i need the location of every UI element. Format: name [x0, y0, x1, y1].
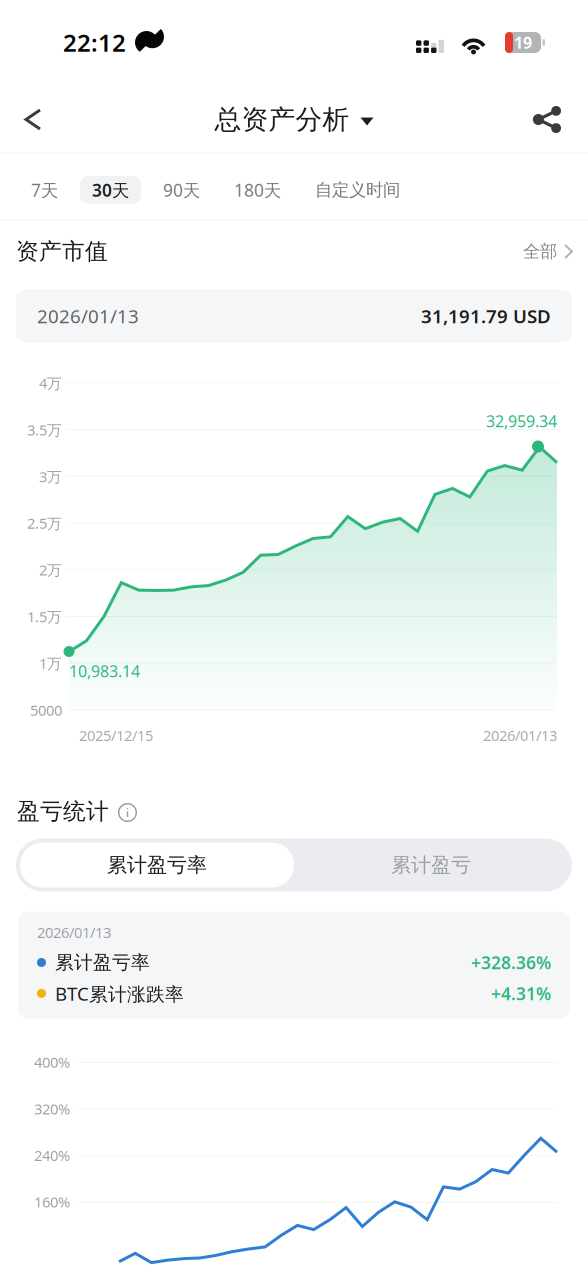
button[interactable]: 180天: [217, 176, 298, 204]
staticText: 30天: [92, 178, 129, 201]
staticText: 总资产分析: [214, 103, 349, 136]
staticText: 7天: [31, 178, 58, 201]
button[interactable]: 7天: [14, 176, 75, 204]
staticText: 10,983.14: [69, 660, 140, 682]
staticText: BTC累计涨跌率: [55, 981, 184, 1006]
staticText: 2026/01/13: [37, 922, 111, 942]
staticText: 1.5万: [27, 607, 62, 626]
staticText: 2.5万: [27, 513, 62, 533]
staticText: 160%: [34, 1192, 70, 1212]
staticText: 资产市值: [16, 238, 108, 265]
staticText: 180天: [234, 178, 281, 201]
button[interactable]: 90天: [146, 176, 217, 204]
staticText: 2025/12/15: [79, 725, 153, 745]
staticText: 240%: [34, 1146, 70, 1165]
staticText: 22:12: [63, 27, 126, 58]
button[interactable]: 累计盈亏: [294, 842, 568, 887]
button[interactable]: Share: [520, 90, 574, 149]
staticText: 3万: [39, 467, 62, 486]
staticText: 2026/01/13: [483, 725, 557, 745]
staticText: 累计盈亏率: [55, 951, 150, 974]
staticText: 90天: [163, 178, 200, 201]
button[interactable]: 总资产分析: [202, 93, 385, 146]
staticText: 31,191.79 USD: [421, 304, 551, 328]
button[interactable]: 累计盈亏率: [20, 842, 294, 887]
staticText: 400%: [34, 1052, 70, 1072]
staticText: 19: [514, 32, 532, 53]
staticText: 32,959.34: [486, 410, 557, 432]
staticText: 1万: [39, 653, 62, 673]
button[interactable]: 自定义时间: [298, 176, 417, 204]
staticText: 累计盈亏率: [107, 853, 207, 877]
staticText: 2026/01/13: [37, 304, 139, 328]
staticText: 自定义时间: [315, 179, 400, 201]
button[interactable]: 30天: [75, 176, 146, 204]
staticText: 盈亏统计: [17, 798, 109, 825]
button[interactable]: Back: [0, 90, 66, 149]
staticText: +328.36%: [471, 951, 551, 974]
staticText: 2万: [39, 560, 62, 580]
staticText: 320%: [34, 1099, 70, 1118]
staticText: 累计盈亏: [391, 853, 471, 877]
button[interactable]: 全部: [523, 231, 572, 272]
staticText: 3.5万: [27, 420, 62, 439]
staticText: 全部: [523, 241, 557, 262]
staticText: +4.31%: [491, 982, 551, 1005]
staticText: 4万: [39, 373, 62, 393]
staticText: 5000: [30, 700, 62, 720]
